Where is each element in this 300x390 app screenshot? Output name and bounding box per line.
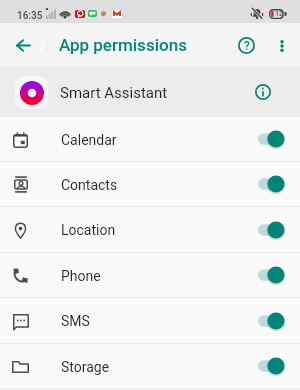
button[interactable]: Navigate up (9, 31, 38, 60)
staticText: SMS (61, 313, 90, 329)
button[interactable]: Permission toggle (258, 221, 285, 240)
button[interactable]: Calendar (0, 117, 300, 162)
staticText: 12 (275, 10, 283, 18)
staticText: Smart Assistant (60, 84, 168, 102)
button[interactable]: Contacts (0, 162, 300, 207)
button[interactable]: Permission toggle (258, 175, 285, 194)
staticText: Location (61, 222, 116, 238)
button[interactable]: SMS (0, 298, 300, 344)
staticText: 16:35 (17, 10, 43, 22)
button[interactable]: Location (0, 207, 300, 253)
button[interactable]: Smart Assistant (0, 67, 300, 117)
button[interactable]: Permission toggle (258, 312, 285, 331)
button[interactable]: Storage (0, 344, 300, 389)
staticText: ? (244, 39, 250, 53)
button[interactable]: Permission toggle (258, 357, 285, 376)
button[interactable]: More options (268, 31, 296, 59)
staticText: App permissions (59, 35, 187, 55)
button[interactable]: Permission toggle (258, 130, 285, 149)
button[interactable]: Help (232, 31, 260, 59)
button[interactable]: Phone (0, 253, 300, 298)
staticText: Phone (61, 268, 101, 284)
button[interactable]: Permission toggle (258, 266, 285, 285)
staticText: Storage (61, 359, 110, 375)
button[interactable]: About Smart Assistant (248, 77, 278, 107)
staticText: Calendar (61, 132, 117, 148)
staticText: Contacts (61, 177, 118, 193)
